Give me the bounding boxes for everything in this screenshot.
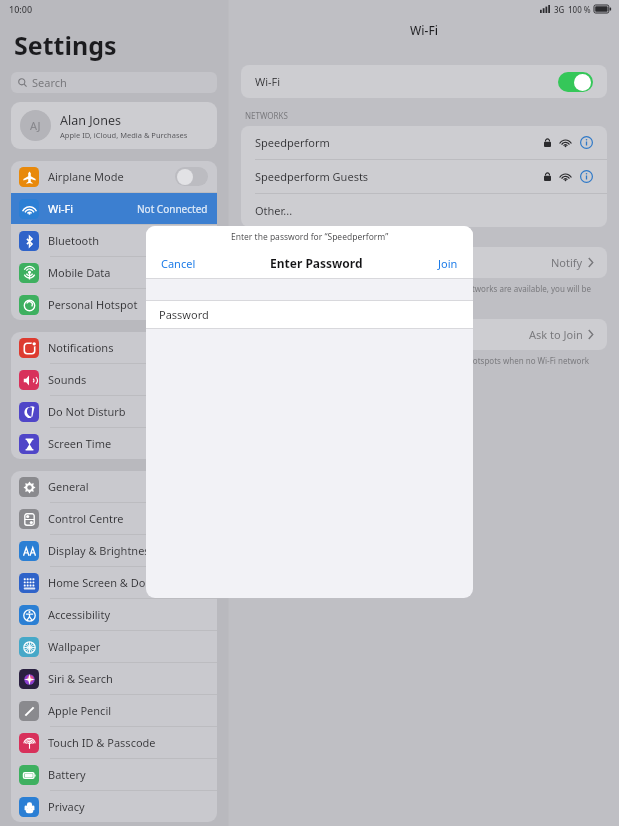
staticText: Cancel — [161, 256, 196, 271]
button[interactable]: Touch ID & Passcode — [11, 727, 217, 758]
staticText: Settings — [14, 28, 117, 62]
button[interactable]: Bluetooth — [11, 225, 217, 256]
staticText: Do Not Disturb — [48, 404, 126, 419]
button[interactable]: Ask to Join Networks — [241, 247, 607, 278]
button[interactable]: Wi-Fi — [241, 65, 607, 98]
staticText: Apple ID, iCloud, Media & Purchases — [60, 130, 188, 140]
staticText: Wi-Fi — [229, 22, 619, 38]
staticText: Password — [159, 307, 209, 322]
button[interactable]: Control Centre — [11, 503, 217, 534]
staticText: Ask to Join — [529, 327, 583, 342]
button[interactable]: Password — [146, 301, 473, 328]
staticText: 10:00 — [9, 3, 33, 15]
staticText: Battery — [48, 767, 86, 782]
staticText: Mobile Data — [48, 265, 111, 280]
staticText: Wallpaper — [48, 639, 101, 654]
staticText: Apple Pencil — [48, 703, 112, 718]
staticText: Other... — [255, 203, 293, 218]
staticText: Display & Brightness — [48, 543, 155, 558]
staticText: Sounds — [48, 372, 87, 387]
button[interactable]: Accessibility — [11, 599, 217, 630]
other: Secured — [544, 172, 551, 181]
button[interactable]: Search — [11, 72, 217, 93]
staticText: Enter the password for “Speedperform” — [231, 231, 389, 243]
button[interactable]: Siri & Search — [11, 663, 217, 694]
staticText: Wi-Fi — [48, 201, 74, 216]
staticText: Notifications — [48, 340, 114, 355]
staticText: 3G — [554, 4, 565, 15]
button[interactable]: Speedperform — [241, 126, 607, 159]
staticText: General — [48, 479, 89, 494]
staticText: Personal Hotspot — [48, 297, 138, 312]
button[interactable]: Display & Brightness — [11, 535, 217, 566]
other: Signal strength — [560, 173, 571, 181]
staticText: Touch ID & Passcode — [48, 735, 156, 750]
button[interactable]: Home Screen & Dock — [11, 567, 217, 598]
staticText: Auto-Join Hotspot — [255, 327, 347, 342]
staticText: Speedperform — [255, 135, 330, 150]
staticText: Notify — [551, 255, 583, 270]
button[interactable]: Cancel — [159, 254, 198, 273]
button[interactable]: Apple Pencil — [11, 695, 217, 726]
staticText: Airplane Mode — [48, 169, 124, 184]
button[interactable]: Wallpaper — [11, 631, 217, 662]
button[interactable]: More info about Speedperform — [580, 136, 593, 149]
staticText: Join — [438, 256, 458, 271]
button[interactable]: Privacy — [11, 791, 217, 822]
staticText: Screen Time — [48, 436, 112, 451]
staticText: Speedperform Guests — [255, 169, 369, 184]
button[interactable]: Screen Time — [11, 428, 217, 459]
staticText: Alan Jones — [60, 112, 121, 129]
button[interactable]: Auto-Join Hotspot — [241, 319, 607, 350]
other: Secured — [544, 138, 551, 147]
other: Signal strength — [560, 139, 571, 147]
button[interactable]: Join — [436, 254, 460, 273]
button[interactable]: Do Not Disturb — [11, 396, 217, 427]
staticText: Search — [32, 75, 67, 90]
staticText: 100 % — [568, 4, 591, 15]
staticText: Known networks will be joined automatica… — [245, 283, 591, 305]
button[interactable]: Other... — [241, 194, 607, 227]
staticText: AJ — [30, 118, 41, 133]
staticText: Not Connected — [137, 202, 208, 216]
button[interactable]: Sounds — [11, 364, 217, 395]
button[interactable]: AJ — [11, 102, 217, 149]
staticText: Ask to Join Networks — [255, 255, 362, 270]
button[interactable]: Wi-Fi — [11, 193, 217, 224]
button[interactable]: Airplane Mode — [11, 161, 217, 192]
button[interactable]: Battery — [11, 759, 217, 790]
staticText: NETWORKS — [245, 110, 288, 121]
staticText: Accessibility — [48, 607, 111, 622]
staticText: Control Centre — [48, 511, 124, 526]
staticText: Home Screen & Dock — [48, 575, 157, 590]
staticText: Privacy — [48, 799, 85, 814]
staticText: Bluetooth — [48, 233, 100, 248]
button[interactable]: Notifications — [11, 332, 217, 363]
button[interactable]: Speedperform Guests — [241, 160, 607, 193]
staticText: Wi-Fi — [255, 74, 281, 89]
staticText: Enter Password — [270, 255, 363, 271]
staticText: Allow this device to automatically disco… — [245, 355, 589, 377]
button[interactable]: General — [11, 471, 217, 502]
button[interactable]: More info about Speedperform Guests — [580, 170, 593, 183]
button[interactable]: Personal Hotspot — [11, 289, 217, 320]
button[interactable]: Mobile Data — [11, 257, 217, 288]
staticText: Siri & Search — [48, 671, 113, 686]
